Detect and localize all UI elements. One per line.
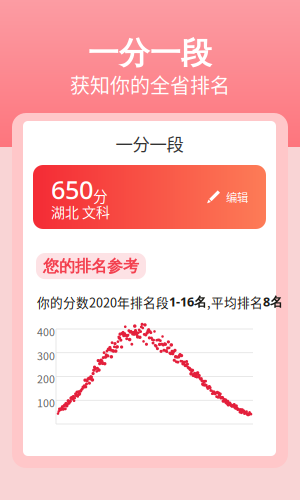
staticText: 你的分数2020年排名段1-16名,平均排名8名 <box>37 293 283 311</box>
staticText: 400 <box>37 324 55 339</box>
button[interactable]: 编辑 <box>202 183 252 211</box>
staticText: 一分一段 <box>88 34 212 73</box>
staticText: 300 <box>37 348 55 363</box>
staticText: 一分一段 <box>115 131 183 156</box>
staticText: 200 <box>37 371 55 386</box>
staticText: 您的排名参考 <box>43 256 139 276</box>
staticText: 编辑 <box>226 189 248 205</box>
staticText: 100 <box>37 395 55 410</box>
staticText: 湖北 文科 <box>51 201 110 221</box>
staticText: 650分 <box>51 172 108 206</box>
staticText: 获知你的全省排名 <box>70 70 230 99</box>
